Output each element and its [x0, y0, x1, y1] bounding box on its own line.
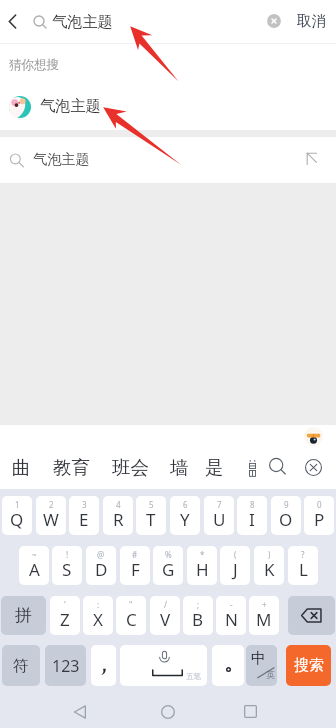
button[interactable]: More candidates: [243, 455, 263, 481]
staticText: 中: [251, 649, 266, 668]
staticText: ": [129, 599, 133, 610]
button[interactable]: 6: [170, 496, 200, 535]
button[interactable]: 教育: [46, 450, 97, 484]
button[interactable]: Use this search term: [296, 142, 332, 178]
staticText: 英: [266, 669, 275, 680]
staticText: ;: [197, 599, 200, 610]
staticText: C: [126, 608, 137, 631]
staticText: (: [234, 549, 237, 560]
button[interactable]: 7: [204, 496, 234, 535]
button[interactable]: -: [216, 596, 246, 635]
staticText: O: [279, 508, 293, 531]
button[interactable]: 符: [2, 645, 40, 686]
button[interactable]: 班会: [105, 450, 156, 484]
button[interactable]: %: [153, 546, 183, 585]
button[interactable]: ?: [288, 546, 318, 585]
button[interactable]: 5: [136, 496, 166, 535]
button[interactable]: [212, 645, 244, 686]
staticText: 气泡主题: [52, 12, 113, 31]
button[interactable]: 气泡主题: [0, 137, 336, 183]
staticText: L: [299, 558, 308, 581]
button[interactable]: 气泡主题: [0, 84, 336, 130]
staticText: Q: [10, 508, 24, 531]
button[interactable]: 3: [69, 496, 99, 535]
button[interactable]: Backspace: [288, 596, 335, 635]
button[interactable]: 0: [304, 496, 334, 535]
button[interactable]: Clear text: [260, 7, 288, 35]
button[interactable]: 2: [36, 496, 66, 535]
button[interactable]: 是: [198, 450, 231, 484]
button[interactable]: Space: [120, 645, 207, 686]
button[interactable]: Back: [0, 7, 26, 36]
staticText: 5: [149, 499, 154, 510]
staticText: Y: [180, 508, 190, 531]
staticText: 0: [317, 499, 322, 510]
button[interactable]: #: [120, 546, 150, 585]
button[interactable]: Hide keyboard: [299, 453, 327, 481]
staticText: @: [97, 549, 105, 560]
staticText: 是: [205, 456, 224, 479]
staticText: 2: [49, 499, 54, 510]
staticText: 8: [250, 499, 255, 510]
staticText: 123: [52, 655, 80, 677]
button[interactable]: ': [50, 596, 80, 635]
button[interactable]: 曲: [5, 450, 38, 484]
staticText: W: [43, 508, 59, 531]
button[interactable]: 1: [2, 496, 32, 535]
staticText: K: [264, 558, 275, 581]
staticText: F: [131, 558, 140, 581]
staticText: B: [192, 608, 204, 631]
staticText: 4: [116, 499, 121, 510]
button[interactable]: 墙: [163, 450, 196, 484]
button[interactable]: Home: [154, 695, 182, 728]
button[interactable]: 拼: [1, 596, 46, 635]
button[interactable]: ): [254, 546, 284, 585]
staticText: 气泡主题: [40, 96, 101, 115]
staticText: ': [64, 599, 66, 610]
button[interactable]: Search: [263, 452, 291, 480]
button[interactable]: 4: [103, 496, 133, 535]
button[interactable]: @: [86, 546, 116, 585]
staticText: D: [95, 558, 108, 581]
staticText: -: [230, 599, 233, 610]
staticText: :: [97, 599, 100, 610]
staticText: 取消: [297, 12, 327, 31]
staticText: N: [225, 608, 238, 631]
button[interactable]: 123: [45, 645, 86, 686]
staticText: J: [233, 558, 238, 581]
button[interactable]: 取消: [293, 5, 331, 38]
button[interactable]: *: [187, 546, 217, 585]
staticText: 气泡主题: [33, 150, 90, 168]
staticText: /: [164, 599, 167, 610]
staticText: ): [268, 549, 271, 560]
staticText: 7: [217, 499, 222, 510]
button[interactable]: Recent apps: [236, 695, 264, 728]
button[interactable]: [91, 645, 116, 686]
button[interactable]: Chinese English toggle: [246, 645, 277, 686]
button[interactable]: (: [220, 546, 250, 585]
button[interactable]: Back: [66, 695, 94, 728]
staticText: 符: [13, 656, 29, 676]
staticText: U: [213, 508, 226, 531]
staticText: 3: [82, 499, 87, 510]
button[interactable]: 8: [237, 496, 267, 535]
button[interactable]: !: [52, 546, 82, 585]
button[interactable]: 搜索: [286, 645, 331, 686]
staticText: M: [256, 608, 272, 631]
staticText: 五笔: [186, 672, 201, 681]
staticText: Z: [60, 608, 70, 631]
staticText: ~: [32, 549, 37, 560]
button[interactable]: /: [150, 596, 180, 635]
staticText: 拼: [15, 605, 32, 626]
staticText: H: [196, 558, 209, 581]
staticText: T: [146, 508, 156, 531]
button[interactable]: ~: [19, 546, 49, 585]
staticText: *: [200, 549, 205, 560]
staticText: G: [162, 558, 175, 581]
button[interactable]: ;: [183, 596, 213, 635]
button[interactable]: 9: [271, 496, 301, 535]
button[interactable]: +: [249, 596, 279, 635]
button[interactable]: ": [116, 596, 146, 635]
staticText: 猜你想搜: [9, 57, 59, 73]
button[interactable]: :: [83, 596, 113, 635]
